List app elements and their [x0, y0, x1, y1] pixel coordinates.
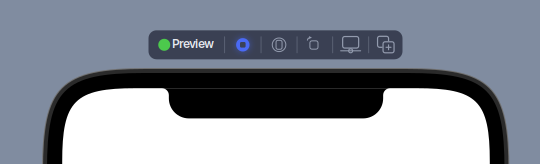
button[interactable]: Preview — [148, 30, 224, 59]
button[interactable] — [333, 30, 368, 59]
button[interactable] — [298, 30, 332, 59]
staticText: Preview — [172, 36, 214, 51]
button[interactable] — [225, 30, 261, 59]
button[interactable] — [369, 30, 403, 59]
button[interactable] — [262, 30, 297, 59]
